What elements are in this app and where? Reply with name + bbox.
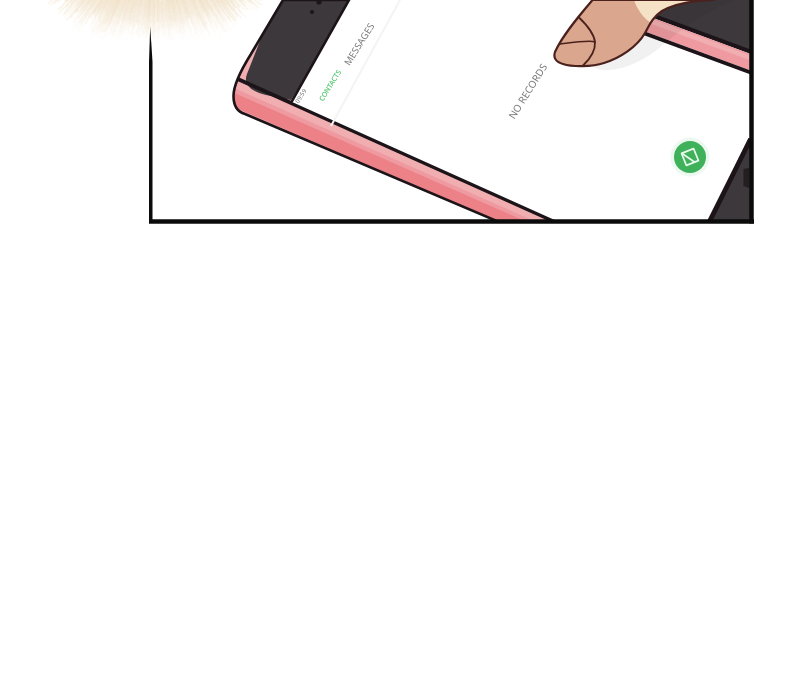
button[interactable]: Compose new message [672,138,707,173]
